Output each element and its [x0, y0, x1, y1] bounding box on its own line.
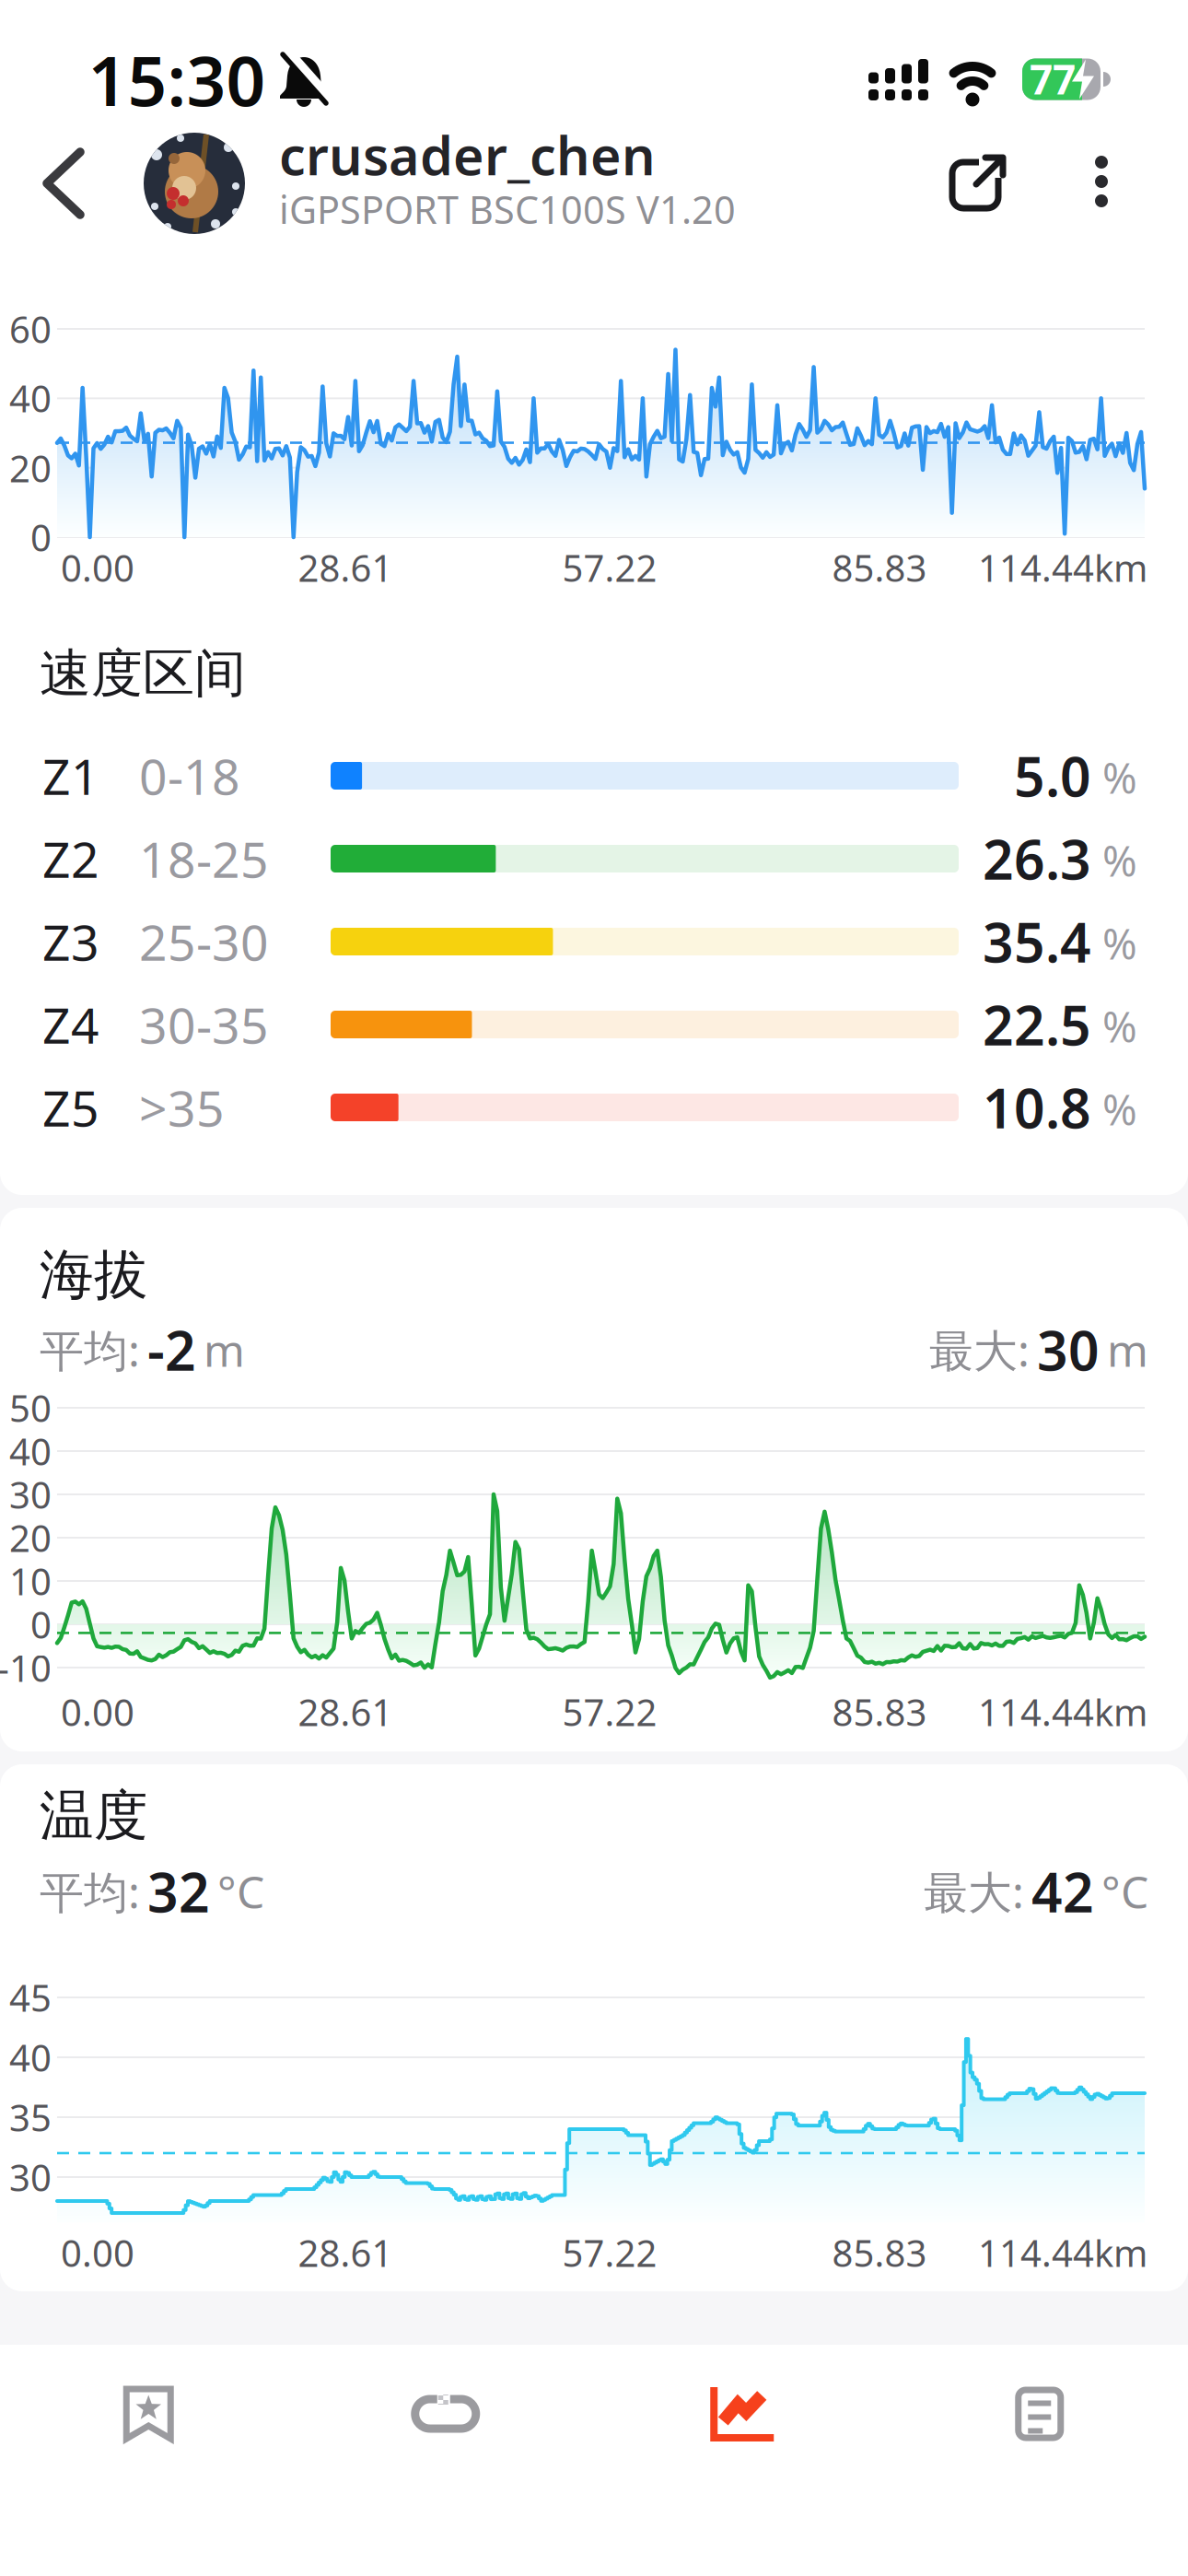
staticText: % [1102, 1082, 1137, 1137]
staticText: >35 [139, 1075, 225, 1140]
staticText: 最大: [924, 1862, 1024, 1921]
staticText: 0-18 [139, 743, 240, 808]
staticText: 15:30 [88, 34, 266, 125]
staticText: 0.00 [61, 543, 134, 592]
staticText: 85.83 [832, 1687, 927, 1736]
staticText: 25-30 [139, 909, 269, 974]
staticText: Z3 [42, 909, 99, 974]
staticText: 114.44km [978, 543, 1147, 592]
staticText: 30 [9, 2153, 52, 2201]
staticText: crusader_chen [279, 120, 656, 190]
staticText: 32 [147, 1856, 210, 1927]
staticText: °C [1101, 1862, 1148, 1921]
staticText: -10 [0, 1643, 52, 1692]
button[interactable]: Track [297, 2345, 594, 2483]
staticText: Z1 [42, 743, 99, 808]
staticText: 28.61 [298, 2228, 393, 2277]
staticText: 30-35 [139, 992, 269, 1057]
staticText: 35.4 [983, 906, 1091, 977]
staticText: 温度 [40, 1783, 148, 1849]
staticText: 0 [30, 513, 52, 562]
staticText: 42 [1031, 1856, 1094, 1927]
staticText: 28.61 [298, 543, 393, 592]
staticText: 0.00 [61, 2228, 134, 2277]
staticText: 40 [9, 2033, 52, 2082]
staticText: % [1102, 999, 1137, 1054]
staticText: 20 [9, 444, 52, 492]
staticText: 0 [30, 1600, 52, 1649]
staticText: % [1102, 750, 1137, 805]
staticText: 28.61 [298, 1687, 393, 1736]
staticText: 5.0 [1014, 740, 1091, 812]
staticText: Z5 [42, 1075, 99, 1140]
staticText: 114.44km [978, 1687, 1147, 1736]
staticText: -2 [147, 1314, 196, 1386]
staticText: iGPSPORT BSC100S V1.20 [279, 184, 736, 234]
staticText: 40 [9, 374, 52, 422]
button[interactable]: Favorites [0, 2345, 297, 2483]
staticText: 85.83 [832, 2228, 927, 2277]
staticText: 57.22 [562, 543, 657, 592]
staticText: 0.00 [61, 1687, 134, 1736]
staticText: 35 [9, 2093, 52, 2142]
staticText: 40 [9, 1427, 52, 1475]
staticText: 26.3 [983, 823, 1091, 895]
staticText: 平均: [40, 1320, 140, 1379]
button[interactable]: Share [949, 153, 1007, 212]
staticText: 30 [9, 1470, 52, 1519]
staticText: 18-25 [139, 826, 269, 891]
button[interactable]: More [1090, 155, 1112, 210]
staticText: 20 [9, 1513, 52, 1562]
staticText: 77 [1030, 52, 1076, 106]
staticText: 平均: [40, 1862, 140, 1921]
staticText: 最大: [929, 1320, 1030, 1379]
button[interactable]: Statistics [594, 2345, 891, 2483]
staticText: 85.83 [832, 543, 927, 592]
button[interactable]: Back [32, 146, 97, 220]
staticText: 57.22 [562, 2228, 657, 2277]
staticText: 50 [9, 1383, 52, 1432]
staticText: % [1102, 833, 1137, 888]
staticText: 10.8 [983, 1071, 1091, 1143]
staticText: 海拔 [40, 1242, 148, 1308]
staticText: 45 [9, 1973, 52, 2022]
staticText: 10 [9, 1556, 52, 1605]
staticText: 60 [9, 304, 52, 353]
staticText: 57.22 [562, 1687, 657, 1736]
staticText: 速度区间 [40, 642, 246, 705]
staticText: Z2 [42, 826, 99, 891]
button[interactable]: Records [891, 2345, 1188, 2483]
staticText: 114.44km [978, 2228, 1147, 2277]
staticText: % [1102, 916, 1137, 971]
staticText: °C [217, 1862, 264, 1921]
staticText: Z4 [42, 992, 99, 1057]
staticText: m [204, 1320, 245, 1379]
staticText: 30 [1037, 1314, 1100, 1386]
staticText: m [1107, 1320, 1148, 1379]
staticText: 22.5 [983, 989, 1091, 1060]
